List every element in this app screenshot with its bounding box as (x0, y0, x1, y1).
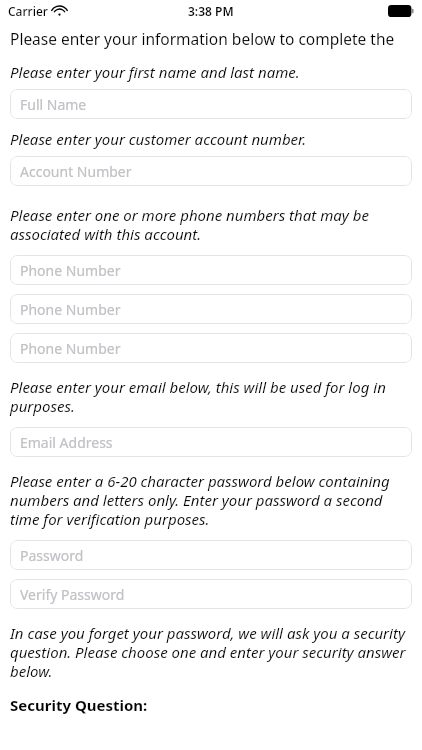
button[interactable]: Phone Number (10, 255, 412, 285)
staticText: Verify Password (20, 585, 125, 604)
staticText: Phone Number (20, 339, 121, 358)
staticText: 3:38 PM (188, 3, 234, 19)
staticText: Security Question: (10, 695, 412, 715)
staticText: In case you forget your password, we wil… (10, 623, 412, 681)
staticText: Account Number (20, 162, 132, 181)
staticText: Please enter a 6-20 character password b… (10, 471, 412, 529)
staticText: Carrier (8, 3, 48, 19)
staticText: Please enter your first name and last na… (10, 62, 412, 82)
staticText: Password (20, 546, 84, 565)
button[interactable]: Password (10, 540, 412, 570)
staticText: Phone Number (20, 300, 121, 319)
staticText: Phone Number (20, 261, 121, 280)
staticText: Full Name (20, 95, 87, 114)
button[interactable]: Account Number (10, 156, 412, 186)
staticText: Please enter your email below, this will… (10, 377, 412, 416)
staticText: Please enter one or more phone numbers t… (10, 205, 412, 244)
staticText: Please enter your information below to c… (10, 28, 412, 49)
staticText: Please enter your customer account numbe… (10, 129, 412, 149)
button[interactable]: Phone Number (10, 333, 412, 363)
button[interactable]: Phone Number (10, 294, 412, 324)
button[interactable]: Email Address (10, 427, 412, 457)
staticText: Email Address (20, 433, 113, 452)
button[interactable]: Full Name (10, 89, 412, 119)
button[interactable]: Verify Password (10, 579, 412, 609)
